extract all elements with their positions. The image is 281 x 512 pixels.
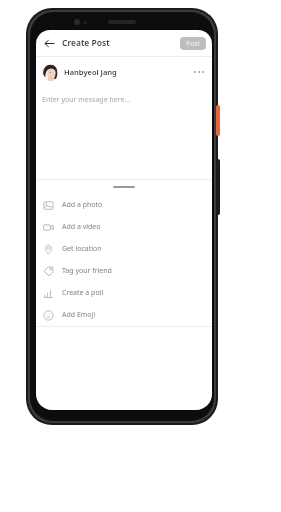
staticText: Add a video <box>62 222 101 232</box>
button[interactable]: Add a photo <box>36 194 212 216</box>
button[interactable]: More options <box>191 64 207 80</box>
button[interactable]: Back <box>40 34 58 52</box>
button[interactable]: Get location <box>36 238 212 260</box>
staticText: Hanbyeol Jang <box>64 67 117 77</box>
staticText: Add a photo <box>62 200 103 210</box>
button[interactable]: Create a poll <box>36 282 212 304</box>
button[interactable]: Tag your friend <box>36 260 212 282</box>
button[interactable]: Add a video <box>36 216 212 238</box>
staticText: Tag your friend <box>62 266 112 276</box>
button[interactable]: Post <box>180 37 206 50</box>
staticText: Enter your message here... <box>42 95 131 105</box>
staticText: Get location <box>62 244 102 254</box>
staticText: Create Post <box>62 37 110 49</box>
staticText: Post <box>186 39 200 48</box>
staticText: Add Emoji <box>62 310 96 320</box>
button[interactable]: Enter your message here... <box>36 87 212 179</box>
staticText: Create a poll <box>62 288 104 298</box>
button[interactable]: Add Emoji <box>36 304 212 326</box>
